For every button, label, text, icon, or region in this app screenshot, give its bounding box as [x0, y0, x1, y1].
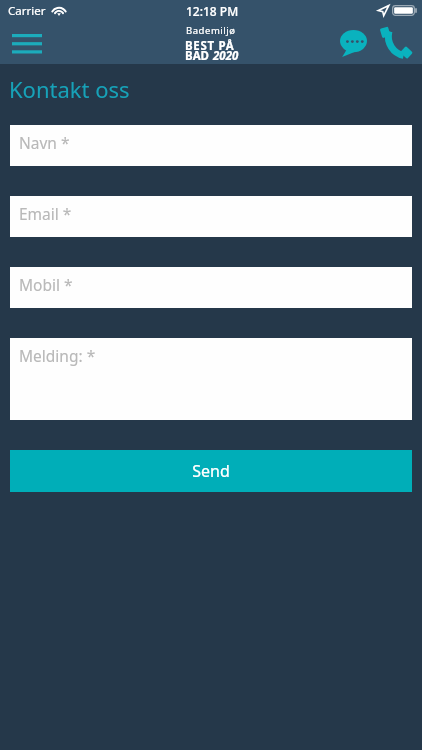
- staticText: BEST PÅ: [185, 38, 235, 54]
- staticText: Mobil *: [19, 274, 73, 295]
- button[interactable]: Email *: [10, 196, 412, 237]
- staticText: Melding: *: [19, 345, 96, 366]
- button[interactable]: Mobil *: [10, 267, 412, 308]
- staticText: Send: [192, 460, 230, 482]
- button[interactable]: Chat: [332, 22, 374, 64]
- staticText: Kontakt oss: [9, 74, 130, 104]
- button[interactable]: Call: [375, 22, 417, 64]
- staticText: BAD: [185, 48, 210, 64]
- staticText: Carrier: [8, 3, 46, 19]
- staticText: Bademiljø: [186, 24, 236, 37]
- staticText: 12:18 PM: [186, 3, 239, 19]
- button[interactable]: Melding: *: [10, 338, 412, 420]
- button[interactable]: Menu: [4, 26, 49, 60]
- button[interactable]: Navn *: [10, 125, 412, 166]
- staticText: 2020: [213, 48, 239, 64]
- other: Location: [378, 5, 389, 16]
- staticText: Email *: [19, 203, 72, 224]
- button[interactable]: Send: [10, 450, 412, 492]
- staticText: Navn *: [19, 132, 70, 153]
